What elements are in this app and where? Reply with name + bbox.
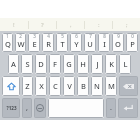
- staticText: R: [46, 39, 51, 49]
- staticText: :: [98, 21, 100, 29]
- staticText: V: [67, 81, 72, 91]
- staticText: 2: [19, 33, 22, 39]
- staticText: X: [39, 81, 44, 91]
- button[interactable]: J: [91, 54, 103, 74]
- staticText: J: [96, 59, 99, 69]
- staticText: Z: [25, 81, 30, 91]
- button[interactable]: G: [63, 54, 75, 74]
- button[interactable]: ?: [29, 18, 56, 31]
- staticText: Q: [5, 39, 11, 49]
- button[interactable]: B: [77, 76, 89, 96]
- staticText: U: [87, 39, 93, 49]
- staticText: D: [38, 59, 44, 69]
- staticText: ?123: [6, 105, 17, 111]
- staticText: 5: [61, 33, 64, 39]
- button[interactable]: 6: [70, 33, 82, 52]
- staticText: M: [108, 81, 115, 91]
- button[interactable]: ,: [22, 98, 32, 118]
- staticText: ;: [126, 21, 128, 29]
- staticText: !: [13, 21, 15, 29]
- button[interactable]: .: [106, 98, 116, 118]
- button[interactable]: Enter: [118, 98, 138, 118]
- button[interactable]: Shift: [2, 76, 20, 96]
- staticText: ?: [41, 21, 44, 29]
- staticText: 1: [6, 33, 9, 39]
- button[interactable]: Emoji: [34, 98, 46, 118]
- staticText: 3: [33, 33, 36, 39]
- button[interactable]: Backspace: [119, 76, 138, 96]
- staticText: W: [17, 39, 25, 49]
- button[interactable]: C: [49, 76, 61, 96]
- staticText: H: [80, 59, 86, 69]
- button[interactable]: L: [119, 54, 131, 74]
- button[interactable]: Z: [22, 76, 33, 96]
- button[interactable]: K: [105, 54, 117, 74]
- button[interactable]: N: [91, 76, 103, 96]
- staticText: 0: [131, 33, 134, 39]
- button[interactable]: S: [21, 54, 33, 74]
- staticText: I: [103, 39, 106, 49]
- staticText: B: [81, 81, 86, 91]
- button[interactable]: ?123: [2, 98, 20, 118]
- button[interactable]: 0: [126, 33, 138, 52]
- staticText: P: [130, 39, 135, 49]
- button[interactable]: H: [77, 54, 89, 74]
- button[interactable]: D: [35, 54, 47, 74]
- staticText: Y: [74, 39, 79, 49]
- button[interactable]: A: [8, 54, 19, 74]
- staticText: 8: [103, 33, 106, 39]
- staticText: F: [53, 59, 57, 69]
- button[interactable]: X: [35, 76, 47, 96]
- staticText: S: [25, 59, 30, 69]
- button[interactable]: V: [63, 76, 75, 96]
- staticText: T: [60, 39, 65, 49]
- button[interactable]: M: [105, 76, 117, 96]
- button[interactable]: 5: [56, 33, 68, 52]
- button[interactable]: 7: [84, 33, 96, 52]
- staticText: C: [53, 81, 58, 91]
- staticText: L: [123, 59, 128, 69]
- staticText: N: [94, 81, 100, 91]
- staticText: G: [66, 59, 72, 69]
- staticText: .: [110, 103, 112, 113]
- button[interactable]: 4: [42, 33, 54, 52]
- staticText: 6: [75, 33, 78, 39]
- staticText: A: [11, 59, 16, 69]
- button[interactable]: 1: [2, 33, 13, 52]
- button[interactable]: 8: [98, 33, 110, 52]
- staticText: O: [115, 39, 121, 49]
- staticText: K: [109, 59, 114, 69]
- button[interactable]: Space: [48, 98, 104, 118]
- button[interactable]: 2: [15, 33, 26, 52]
- staticText: 9: [117, 33, 120, 39]
- button[interactable]: F: [49, 54, 61, 74]
- staticText: ,: [70, 21, 72, 29]
- button[interactable]: 9: [112, 33, 124, 52]
- staticText: 7: [89, 33, 92, 39]
- button[interactable]: 3: [28, 33, 40, 52]
- staticText: E: [32, 39, 37, 49]
- staticText: ,: [26, 103, 28, 113]
- staticText: 4: [47, 33, 50, 39]
